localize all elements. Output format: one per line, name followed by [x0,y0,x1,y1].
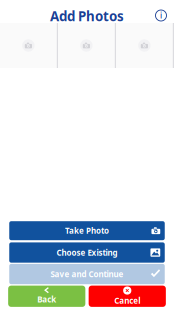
button[interactable]: Choose Existing [9,242,165,263]
staticText: Add Photos [50,7,124,25]
staticText: Back [37,294,56,305]
staticText: Choose Existing [56,247,117,258]
button[interactable]: Info [155,10,166,21]
staticText: Take Photo [65,225,109,236]
button[interactable]: Save and Continue [9,264,165,284]
button[interactable]: Cancel [89,286,166,307]
button[interactable]: Add photo [58,23,115,68]
button[interactable]: Add photo [0,23,57,68]
staticText: i [160,10,162,21]
button[interactable]: Take Photo [9,221,165,240]
staticText: Save and Continue [50,269,123,279]
staticText: Cancel [114,295,140,306]
button[interactable]: Back [8,286,85,307]
button[interactable]: Add photo [116,23,173,68]
